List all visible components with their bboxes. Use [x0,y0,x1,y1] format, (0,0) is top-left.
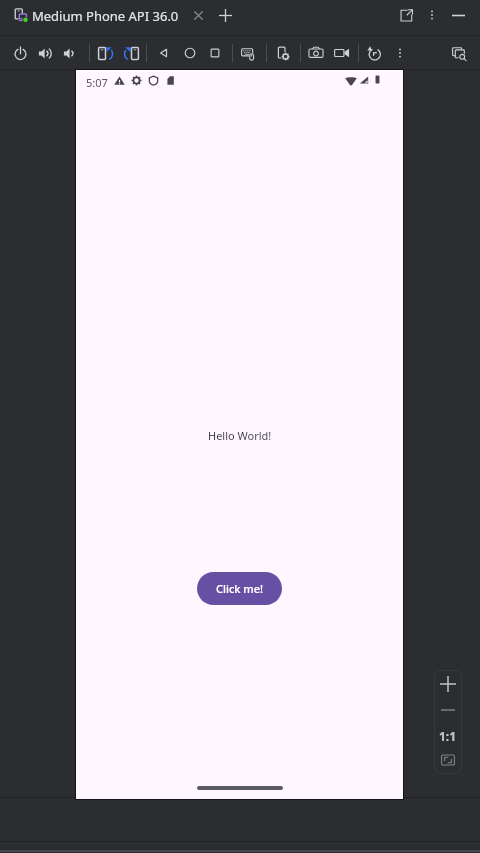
button[interactable]: Zoom out [436,698,460,722]
button[interactable]: Take screenshot [304,41,328,65]
staticText: Click me! [216,581,264,596]
button[interactable]: Record screen [330,41,354,65]
button[interactable]: New tab [215,5,235,25]
button[interactable]: Back [152,41,176,65]
button[interactable]: Close tab [189,6,207,24]
button[interactable]: More options [423,6,441,24]
button[interactable]: More [391,44,409,62]
button[interactable]: Rotate right [119,41,143,65]
button[interactable]: Keyboard and mouse input [236,41,260,65]
button[interactable]: Power [8,41,32,65]
button[interactable]: Click me! [197,572,282,605]
button[interactable]: History [362,41,386,65]
staticText: 5:07 [86,75,108,90]
staticText: 1:1 [439,728,457,744]
button[interactable]: Home [178,41,202,65]
button[interactable]: Fit to screen [437,749,459,771]
button[interactable]: Volume up [33,41,57,65]
button[interactable]: Rotate left [93,41,117,65]
staticText: Hello World! [208,428,272,443]
staticText: Medium Phone API 36.0 [32,7,179,25]
button[interactable]: Minimize [448,5,468,25]
button[interactable]: Open in new window [396,5,416,25]
button[interactable]: 1:1 [436,726,460,746]
button[interactable]: Overview [203,41,227,65]
button[interactable]: Volume down [58,41,82,65]
button[interactable]: Zoom in [436,672,460,696]
button[interactable]: Device settings [271,41,295,65]
button[interactable]: Inspect layout [448,42,470,64]
